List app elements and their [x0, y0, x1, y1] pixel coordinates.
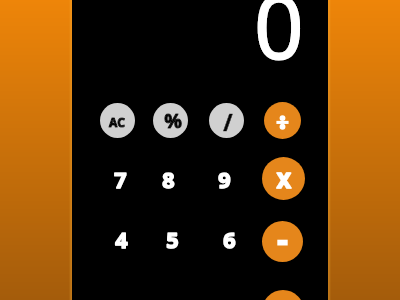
button[interactable]: Divide: [264, 102, 301, 139]
staticText: /: [223, 107, 233, 138]
button[interactable]: %: [153, 103, 188, 138]
staticText: 8: [162, 165, 175, 194]
staticText: 0: [254, 0, 304, 84]
button[interactable]: 7: [98, 157, 142, 201]
button[interactable]: 5: [150, 217, 194, 261]
button[interactable]: 9: [202, 157, 246, 201]
staticText: /: [223, 107, 233, 138]
staticText: 6: [223, 225, 236, 254]
button[interactable]: /: [209, 103, 244, 138]
staticText: 7: [114, 165, 127, 194]
staticText: 5: [166, 225, 179, 254]
staticText: X: [277, 166, 291, 194]
button[interactable]: Multiply: [262, 157, 305, 200]
staticText: %: [164, 107, 182, 134]
button[interactable]: 8: [146, 157, 190, 201]
button[interactable]: AC: [100, 103, 135, 138]
staticText: 5: [166, 225, 179, 254]
staticText: X: [277, 166, 291, 194]
button[interactable]: 4: [99, 217, 143, 261]
staticText: 4: [115, 225, 128, 254]
staticText: 9: [218, 165, 231, 194]
button[interactable]: 6: [207, 217, 251, 261]
staticText: 0: [254, 0, 304, 84]
staticText: AC: [109, 114, 125, 130]
button[interactable]: Add: [262, 290, 304, 300]
staticText: 8: [162, 165, 175, 194]
staticText: AC: [109, 114, 125, 130]
staticText: %: [164, 107, 182, 134]
button[interactable]: Subtract: [262, 221, 303, 262]
staticText: 4: [115, 225, 128, 254]
staticText: 9: [218, 165, 231, 194]
staticText: 6: [223, 225, 236, 254]
staticText: 7: [114, 165, 127, 194]
